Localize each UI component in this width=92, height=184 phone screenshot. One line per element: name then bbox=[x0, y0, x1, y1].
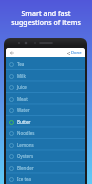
button[interactable]: Oysters bbox=[6, 150, 85, 162]
button[interactable]: Tea bbox=[6, 58, 85, 70]
button[interactable]: Ice tea bbox=[6, 173, 85, 184]
button[interactable]: Back bbox=[8, 49, 15, 56]
button[interactable]: Juice bbox=[6, 81, 85, 93]
staticText: Water bbox=[17, 107, 30, 113]
button[interactable]: Water bbox=[6, 104, 85, 116]
button[interactable]: Done bbox=[71, 50, 82, 56]
staticText: Tea bbox=[17, 61, 25, 67]
staticText: Blender bbox=[17, 165, 34, 171]
button[interactable]: Share bbox=[65, 50, 71, 56]
staticText: Smart and fast suggestions of items bbox=[4, 9, 88, 27]
staticText: Noodles bbox=[17, 130, 35, 136]
staticText: Done bbox=[71, 50, 82, 56]
button[interactable]: Lemons bbox=[6, 139, 85, 151]
button[interactable]: Milk bbox=[6, 70, 85, 82]
staticText: Meat bbox=[17, 96, 28, 102]
staticText: Juice bbox=[17, 84, 27, 90]
staticText: Ice tea bbox=[17, 176, 32, 182]
staticText: Butter bbox=[17, 119, 31, 125]
button[interactable]: Blender bbox=[6, 162, 85, 174]
button[interactable]: Noodles bbox=[6, 127, 85, 139]
button[interactable]: Meat bbox=[6, 93, 85, 105]
staticText: Milk bbox=[17, 73, 26, 79]
button[interactable]: Butter bbox=[6, 116, 85, 128]
staticText: Lemons bbox=[17, 142, 34, 148]
staticText: Oysters bbox=[17, 153, 34, 159]
